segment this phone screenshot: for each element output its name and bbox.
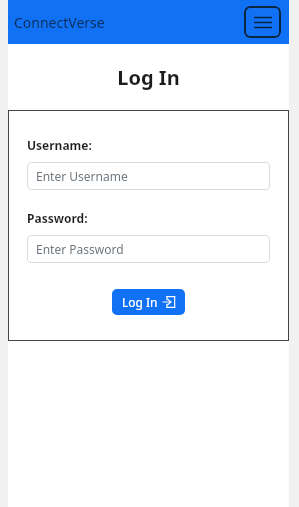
staticText: Enter Password <box>36 241 124 257</box>
button[interactable]: Log In <box>112 289 185 315</box>
staticText: Log In <box>122 294 158 310</box>
button[interactable]: Open navigation menu <box>244 6 281 38</box>
staticText: Username: <box>27 137 92 153</box>
other: Sign in <box>163 296 175 308</box>
staticText: Password: <box>27 210 88 226</box>
button[interactable]: Enter Username <box>27 162 270 190</box>
staticText: Log In <box>117 64 180 91</box>
staticText: ConnectVerse <box>14 13 105 32</box>
staticText: Enter Username <box>36 168 128 184</box>
button[interactable]: Enter Password <box>27 235 270 263</box>
